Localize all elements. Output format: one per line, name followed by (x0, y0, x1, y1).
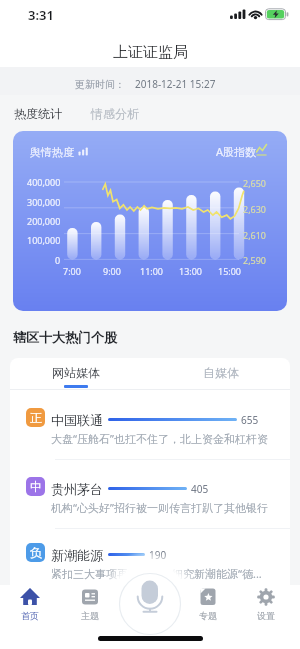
staticText: 400,000 (27, 176, 61, 188)
staticText: 300,000 (27, 196, 61, 208)
staticText: 舆情热度 (30, 145, 74, 159)
button[interactable] (14, 474, 286, 526)
staticText: 0 (55, 254, 61, 266)
staticText: 正 (30, 410, 42, 425)
button[interactable] (10, 585, 50, 625)
staticText: 网站媒体 (52, 365, 100, 380)
staticText: 自媒体 (203, 365, 239, 380)
staticText: 辖区十大热门个股 (13, 329, 117, 345)
staticText: 负 (30, 545, 42, 560)
staticText: 设置 (257, 610, 275, 621)
button[interactable] (188, 585, 228, 625)
button[interactable] (102, 556, 198, 649)
staticText: 主题 (81, 610, 99, 621)
staticText: 专题 (199, 610, 217, 621)
staticText: 中 (30, 479, 42, 494)
staticText: 2,650 (243, 177, 267, 189)
staticText: 大盘“压舱石”也扛不住了，北上资金和杠杆资 (51, 431, 268, 446)
staticText: 15:00 (218, 265, 242, 277)
button[interactable] (40, 360, 112, 386)
staticText: 紧扣三大事项再次追问 细究新潮能源“德... (51, 566, 262, 581)
button[interactable] (246, 585, 286, 625)
staticText: 655 (241, 413, 259, 427)
staticText: 更新时间： (75, 78, 125, 91)
button[interactable] (80, 98, 140, 122)
staticText: 2018-12-21 15:27 (135, 77, 216, 91)
button[interactable] (190, 360, 252, 386)
staticText: 3:31 (28, 6, 54, 24)
button[interactable] (14, 540, 286, 592)
button[interactable] (70, 585, 110, 625)
staticText: 机构“心头好”招行被一则传言打趴了其他银行 (51, 500, 268, 515)
staticText: 情感分析 (91, 106, 139, 121)
button[interactable] (10, 98, 80, 122)
button[interactable] (14, 405, 286, 457)
staticText: 100,000 (27, 234, 61, 246)
staticText: 中国联通 (51, 412, 103, 428)
staticText: 2,590 (243, 254, 267, 266)
staticText: 新潮能源 (51, 547, 103, 563)
staticText: 190 (149, 548, 167, 562)
staticText: 首页 (21, 610, 39, 621)
staticText: 200,000 (27, 215, 61, 227)
staticText: 11:00 (140, 265, 164, 277)
staticText: 2,610 (243, 229, 267, 241)
staticText: 9:00 (103, 265, 121, 277)
staticText: 上证证监局 (113, 43, 188, 62)
button[interactable] (13, 131, 287, 311)
staticText: 7:00 (63, 265, 81, 277)
staticText: A股指数 (216, 144, 257, 159)
staticText: 2,630 (243, 203, 267, 215)
staticText: 贵州茅台 (51, 481, 103, 497)
staticText: 热度统计 (14, 106, 62, 121)
staticText: 405 (191, 482, 209, 496)
staticText: 13:00 (179, 265, 203, 277)
